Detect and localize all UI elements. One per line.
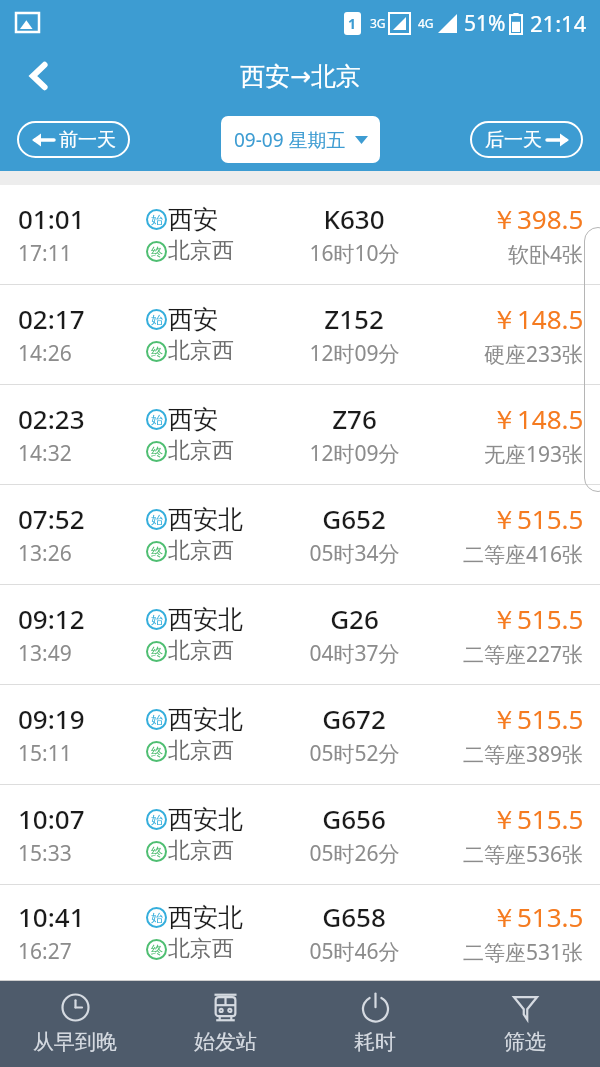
staticText: 05时46分 [309,937,400,966]
staticText: 西安→北京 [240,61,361,92]
staticText: 05时52分 [309,739,400,768]
button[interactable]: 09-09 星期五 [221,116,380,163]
staticText: 1 [348,14,357,33]
staticText: G656 [322,801,386,836]
staticText: 09-09 星期五 [234,127,346,153]
staticText: G26 [330,601,379,636]
staticText: Z152 [324,301,384,336]
staticText: 北京西 [168,537,234,565]
staticText: K630 [323,201,385,236]
staticText: 02:17 [18,301,85,336]
staticText: 始 [151,910,163,925]
staticText: 16:27 [18,937,72,966]
button[interactable]: 10:41 [0,885,600,980]
staticText: 09:12 [18,601,85,636]
staticText: Z76 [332,401,377,436]
staticText: 14:26 [18,339,72,368]
staticText: G672 [322,701,386,736]
staticText: 二等座416张 [463,540,584,569]
staticText: 12时09分 [309,439,400,468]
staticText: 终 [151,942,163,957]
staticText: 西安北 [168,804,243,835]
staticText: 北京西 [168,437,234,465]
staticText: 终 [151,444,163,459]
staticText: 硬座233张 [484,340,584,369]
staticText: 01:01 [18,201,85,236]
staticText: 北京西 [168,637,234,665]
staticText: 筛选 [504,1029,546,1055]
staticText: 14:32 [18,439,72,468]
button[interactable]: 从早到晚 [0,981,150,1067]
staticText: 从早到晚 [33,1029,117,1055]
staticText: 北京西 [168,737,234,765]
staticText: 始 [151,412,163,427]
button[interactable]: 始发站 [150,981,300,1067]
staticText: 西安 [168,404,218,435]
button[interactable]: 前一天 [17,121,130,158]
staticText: 终 [151,644,163,659]
staticText: 西安 [168,204,218,235]
staticText: 10:41 [18,899,85,934]
button[interactable]: Back [12,49,66,103]
staticText: 15:11 [18,739,72,768]
button[interactable]: 02:23 [0,385,600,484]
staticText: 始 [151,512,163,527]
staticText: 13:26 [18,539,72,568]
staticText: 始 [151,312,163,327]
staticText: 终 [151,244,163,259]
button[interactable]: 筛选 [450,981,600,1067]
staticText: 北京西 [168,237,234,265]
staticText: 12时09分 [309,339,400,368]
staticText: 西安北 [168,902,243,933]
staticText: 西安北 [168,704,243,735]
staticText: 北京西 [168,837,234,865]
staticText: ￥148.5 [491,401,584,437]
staticText: 终 [151,544,163,559]
staticText: 3G [370,15,386,31]
staticText: 02:23 [18,401,85,436]
staticText: 21:14 [530,8,587,38]
staticText: ￥148.5 [491,301,584,337]
staticText: 05时26分 [309,839,400,868]
staticText: 04时37分 [309,639,400,668]
staticText: 10:07 [18,801,85,836]
staticText: 终 [151,744,163,759]
staticText: 无座193张 [484,440,584,469]
staticText: ￥398.5 [491,201,584,237]
button[interactable]: 10:07 [0,785,600,884]
button[interactable]: 01:01 [0,185,600,284]
staticText: ￥515.5 [491,801,584,837]
staticText: ￥515.5 [491,701,584,737]
staticText: 终 [151,844,163,859]
button[interactable]: 02:17 [0,285,600,384]
staticText: 西安 [168,304,218,335]
staticText: 始 [151,212,163,227]
staticText: G658 [322,899,386,934]
button[interactable]: 耗时 [300,981,450,1067]
staticText: 始 [151,712,163,727]
button[interactable]: 09:12 [0,585,600,684]
staticText: 二等座227张 [463,640,584,669]
staticText: 二等座531张 [463,938,584,967]
staticText: G652 [322,501,386,536]
button[interactable]: 09:19 [0,685,600,784]
staticText: 4G [418,15,434,31]
staticText: 北京西 [168,935,234,963]
staticText: 17:11 [18,239,72,268]
staticText: 始 [151,812,163,827]
button[interactable]: 后一天 [470,121,583,158]
staticText: 51% [464,9,506,38]
staticText: 07:52 [18,501,85,536]
staticText: 二等座536张 [463,840,584,869]
staticText: ￥515.5 [491,601,584,637]
staticText: 西安北 [168,604,243,635]
staticText: 始发站 [194,1029,257,1055]
staticText: 15:33 [18,839,72,868]
staticText: 09:19 [18,701,85,736]
button[interactable]: 07:52 [0,485,600,584]
staticText: 前一天 [59,128,116,152]
staticText: 05时34分 [309,539,400,568]
staticText: 13:49 [18,639,72,668]
staticText: ￥513.5 [491,899,584,935]
staticText: 始 [151,612,163,627]
